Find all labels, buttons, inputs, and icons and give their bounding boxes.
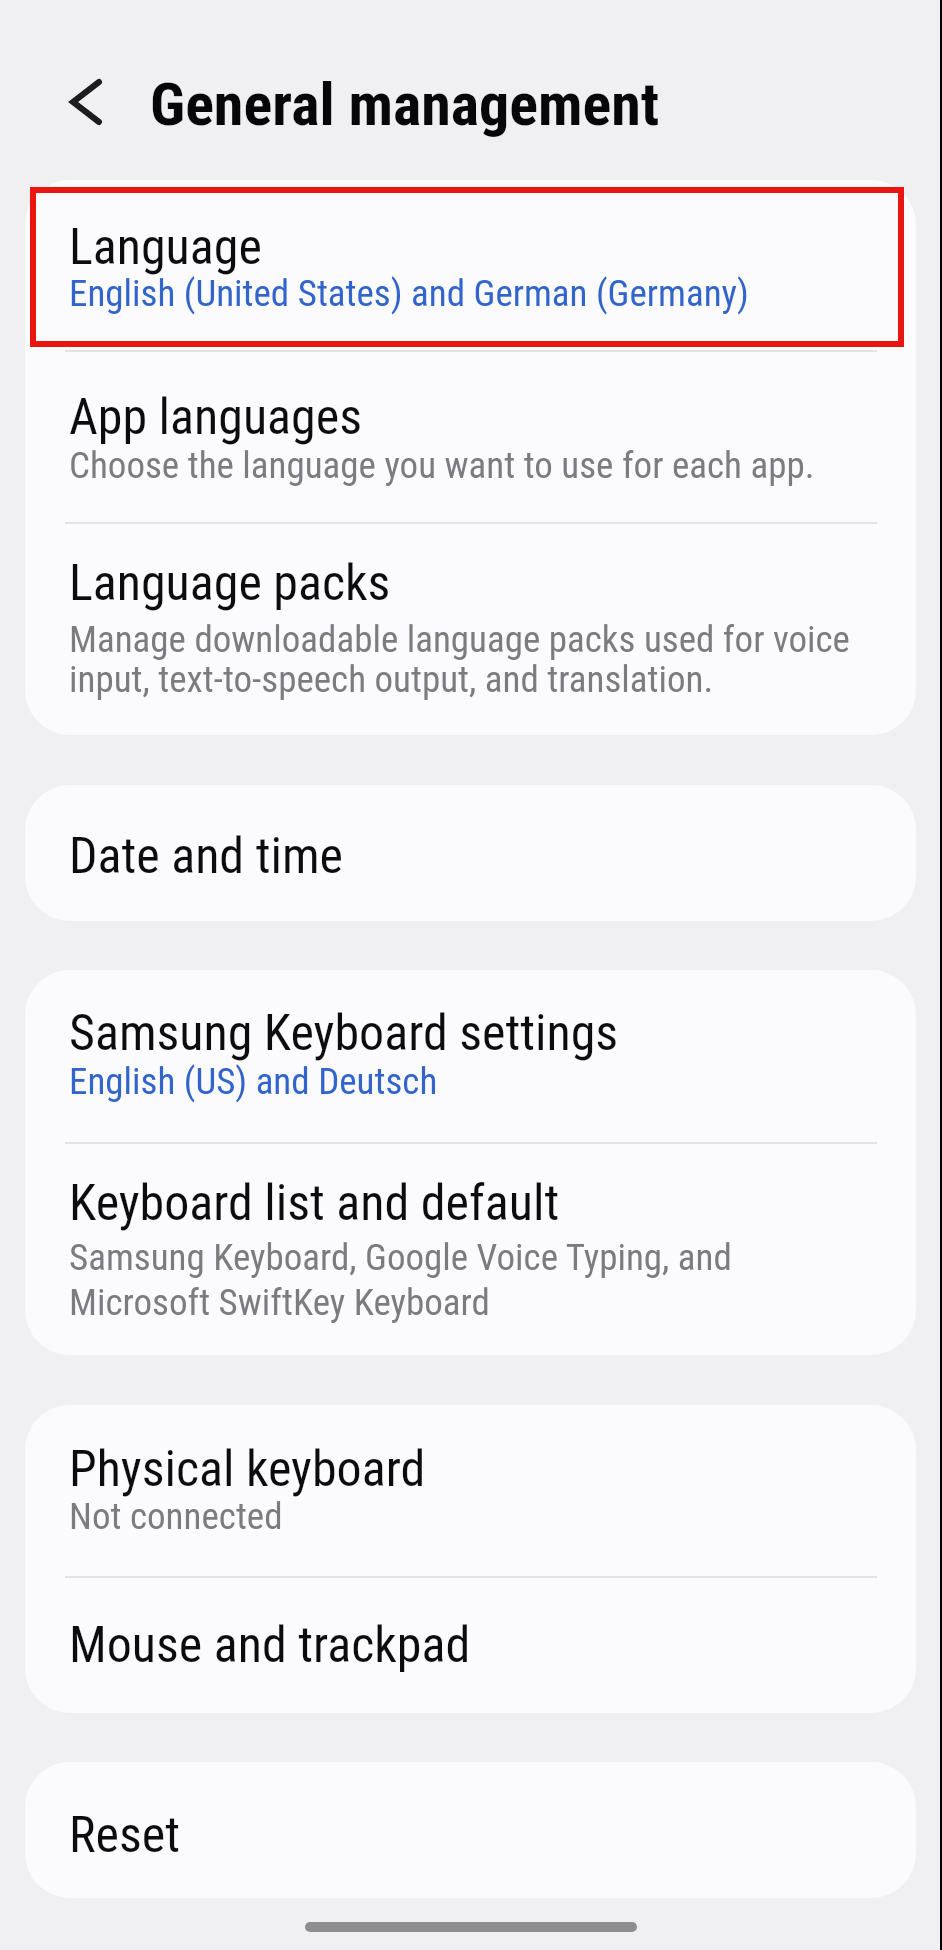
staticText: Samsung Keyboard settings (69, 1004, 619, 1063)
staticText: Reset (69, 1806, 181, 1865)
staticText: Samsung Keyboard, Google Voice Typing, a… (69, 1236, 732, 1279)
staticText: App languages (69, 388, 362, 447)
button[interactable] (25, 970, 916, 1142)
staticText: Choose the language you want to use for … (69, 444, 815, 487)
staticText: Keyboard list and default (69, 1174, 560, 1233)
button[interactable] (25, 1578, 916, 1713)
staticText: Language packs (69, 554, 391, 613)
button[interactable] (25, 1144, 916, 1355)
button[interactable] (25, 524, 916, 735)
button[interactable]: Reset (25, 1762, 916, 1898)
staticText: English (United States) and German (Germ… (69, 272, 749, 315)
staticText: General management (150, 69, 660, 139)
button[interactable] (50, 62, 122, 142)
button[interactable] (25, 352, 916, 522)
staticText: Microsoft SwiftKey Keyboard (69, 1281, 490, 1324)
staticText: Not connected (69, 1495, 283, 1538)
staticText: English (US) and Deutsch (69, 1060, 438, 1103)
staticText: Manage downloadable language packs used … (69, 618, 850, 661)
staticText: Physical keyboard (69, 1440, 426, 1499)
button[interactable] (25, 180, 916, 350)
staticText: Language (69, 218, 262, 277)
button[interactable] (25, 1405, 916, 1576)
staticText: Date and time (69, 827, 343, 886)
staticText: Mouse and trackpad (69, 1616, 471, 1675)
button[interactable]: Date and time (25, 785, 916, 921)
staticText: input, text-to-speech output, and transl… (69, 658, 714, 701)
